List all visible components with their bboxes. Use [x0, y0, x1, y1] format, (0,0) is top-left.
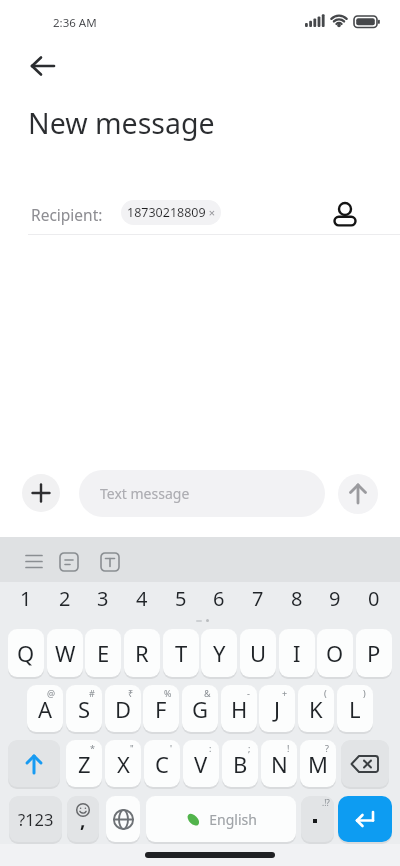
staticText: U — [250, 638, 267, 668]
button[interactable]: A — [27, 685, 63, 732]
button[interactable]: 7 — [240, 583, 276, 613]
button[interactable] — [55, 548, 83, 576]
button[interactable]: ?123 — [9, 796, 62, 842]
staticText: × — [206, 205, 216, 220]
staticText: 18730218809 — [127, 204, 206, 221]
button[interactable]: I — [279, 629, 315, 677]
button[interactable]: L — [337, 685, 373, 732]
button[interactable] — [338, 796, 392, 842]
button[interactable]: M — [300, 740, 336, 787]
staticText: H — [231, 694, 248, 724]
staticText: 3 — [97, 585, 109, 612]
button[interactable]: O — [317, 629, 353, 677]
button[interactable]: J — [259, 685, 295, 732]
button[interactable]: Q — [8, 629, 44, 677]
staticText: M — [308, 749, 328, 779]
button[interactable] — [96, 548, 124, 576]
staticText: 8 — [291, 585, 303, 612]
button[interactable]: D — [105, 685, 141, 732]
staticText: A — [38, 694, 53, 724]
button[interactable]: 6 — [201, 583, 237, 613]
staticText: : — [209, 742, 212, 754]
button[interactable]: B — [222, 740, 258, 787]
staticText: C — [155, 749, 169, 779]
button[interactable]: English — [146, 796, 296, 842]
button[interactable]: N — [261, 740, 297, 787]
staticText: + — [282, 687, 288, 699]
staticText: 2:36 AM — [53, 15, 97, 31]
button[interactable]: 5 — [163, 583, 199, 613]
staticText: Y — [213, 638, 226, 668]
staticText: Recipient: — [31, 204, 103, 225]
staticText: G — [192, 694, 209, 724]
staticText: 6 — [213, 585, 225, 612]
staticText: " — [130, 742, 134, 754]
staticText: ( — [324, 687, 327, 699]
button[interactable]: U — [240, 629, 276, 677]
staticText: L — [349, 694, 361, 724]
staticText: O — [326, 638, 344, 668]
staticText: - — [247, 687, 250, 699]
button[interactable]: 0 — [356, 583, 392, 613]
staticText: ₹ — [128, 687, 134, 699]
button[interactable]: K — [298, 685, 334, 732]
button[interactable]: P — [356, 629, 392, 677]
staticText: X — [117, 749, 130, 779]
staticText: P — [367, 638, 381, 668]
button[interactable]: C — [144, 740, 180, 787]
staticText: , — [80, 807, 86, 833]
staticText: & — [204, 687, 211, 699]
button[interactable]: G — [182, 685, 218, 732]
button[interactable] — [20, 548, 48, 576]
staticText: ; — [248, 742, 251, 754]
button[interactable]: 4 — [124, 583, 160, 613]
staticText: Text message — [100, 484, 190, 503]
button[interactable] — [22, 474, 60, 512]
button[interactable]: 2 — [47, 583, 83, 613]
button[interactable]: X — [105, 740, 141, 787]
button[interactable]: S — [66, 685, 102, 732]
button[interactable] — [341, 740, 389, 787]
staticText: New message — [28, 104, 215, 143]
button[interactable]: H — [221, 685, 257, 732]
button[interactable]: W — [47, 629, 83, 677]
button[interactable] — [330, 194, 360, 230]
staticText: * — [90, 742, 95, 754]
button[interactable]: .!? — [301, 796, 334, 842]
staticText: B — [233, 749, 248, 779]
staticText: 2 — [59, 585, 71, 612]
button[interactable]: 9 — [317, 583, 353, 613]
button[interactable] — [338, 474, 378, 514]
staticText: F — [155, 694, 167, 724]
staticText: English — [202, 810, 257, 829]
button[interactable]: 18730218809 — [121, 200, 221, 225]
staticText: ? — [325, 742, 329, 754]
staticText: .!? — [322, 797, 330, 808]
button[interactable] — [8, 740, 60, 787]
button[interactable] — [22, 46, 62, 86]
staticText: K — [309, 694, 323, 724]
button[interactable]: F — [143, 685, 179, 732]
button[interactable]: Text message — [79, 470, 325, 517]
staticText: 0 — [368, 585, 380, 612]
staticText: T — [175, 638, 188, 668]
staticText: @ — [47, 687, 56, 699]
staticText: % — [164, 687, 172, 699]
button[interactable] — [106, 796, 140, 842]
staticText: J — [274, 694, 281, 724]
button[interactable]: R — [124, 629, 160, 677]
button[interactable]: 1 — [8, 583, 44, 613]
button[interactable]: T — [163, 629, 199, 677]
staticText: R — [135, 638, 149, 668]
staticText: ! — [287, 742, 290, 754]
button[interactable]: V — [183, 740, 219, 787]
staticText: ?123 — [18, 808, 54, 830]
button[interactable]: E — [85, 629, 121, 677]
button[interactable]: Y — [201, 629, 237, 677]
button[interactable]: Z — [66, 740, 102, 787]
button[interactable]: , — [67, 796, 99, 842]
button[interactable]: 3 — [85, 583, 121, 613]
staticText: E — [97, 638, 110, 668]
staticText: 7 — [252, 585, 264, 612]
button[interactable]: 8 — [279, 583, 315, 613]
